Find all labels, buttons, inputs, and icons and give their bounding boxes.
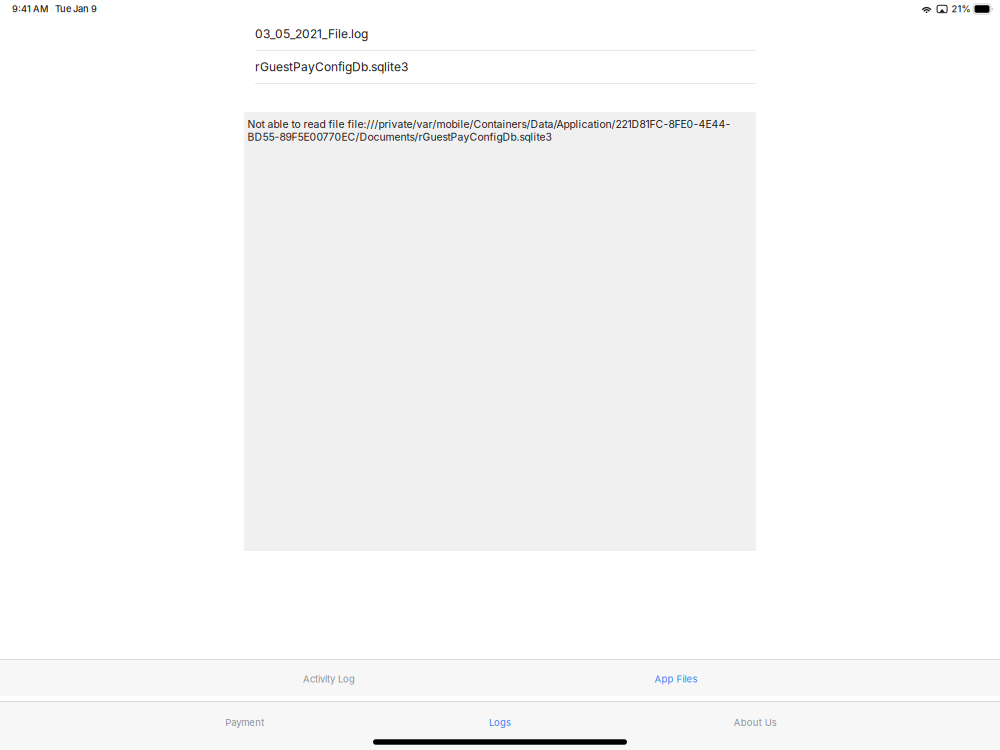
staticText: About Us	[734, 717, 777, 728]
staticText: 21%	[952, 3, 971, 14]
staticText: 9:41 AM	[12, 3, 48, 14]
staticText: 03_05_2021_File.log	[255, 27, 368, 41]
button[interactable]: 03_05_2021_File.log	[255, 18, 756, 50]
button[interactable]: Activity Log	[155, 660, 502, 696]
staticText: Payment	[225, 717, 264, 728]
staticText: Tue Jan 9	[55, 3, 97, 14]
staticText: Activity Log	[303, 673, 355, 685]
staticText: Not able to read file file:///private/va…	[247, 118, 730, 143]
button[interactable]: About Us	[628, 702, 883, 732]
staticText: Logs	[489, 717, 511, 728]
staticText: App Files	[654, 673, 697, 685]
staticText: rGuestPayConfigDb.sqlite3	[255, 60, 408, 74]
button[interactable]: rGuestPayConfigDb.sqlite3	[255, 51, 756, 83]
button[interactable]: App Files	[502, 660, 849, 696]
button[interactable]: Logs	[372, 702, 628, 732]
button[interactable]: Payment	[117, 702, 372, 732]
